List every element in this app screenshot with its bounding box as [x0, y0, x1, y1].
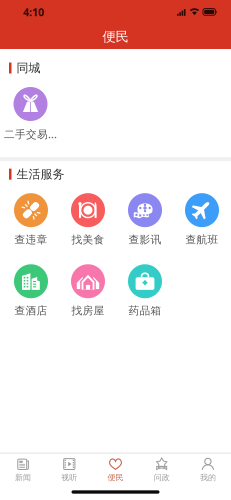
- staticText: 找房屋: [71, 304, 104, 317]
- staticText: 问政: [154, 473, 170, 482]
- staticText: 便民: [102, 29, 128, 45]
- staticText: 查酒店: [14, 304, 47, 317]
- staticText: 二手交易...: [4, 127, 57, 141]
- button[interactable]: 我的: [185, 457, 231, 482]
- button[interactable]: 二手交易...: [2, 87, 59, 141]
- button[interactable]: 查违章: [2, 193, 59, 246]
- button[interactable]: 便民: [92, 457, 139, 482]
- staticText: 4:10: [23, 5, 44, 19]
- staticText: 查航班: [185, 233, 218, 246]
- button[interactable]: 问政: [139, 457, 185, 482]
- staticText: 生活服务: [16, 167, 64, 181]
- staticText: 便民: [107, 473, 123, 482]
- staticText: 新闻: [15, 473, 31, 482]
- button[interactable]: 找房屋: [59, 264, 116, 317]
- button[interactable]: 新闻: [0, 457, 46, 482]
- button[interactable]: 找美食: [59, 193, 116, 246]
- staticText: 查违章: [14, 233, 47, 246]
- staticText: 视听: [61, 473, 77, 482]
- button[interactable]: 查航班: [173, 193, 230, 246]
- staticText: 查影讯: [128, 233, 161, 246]
- button[interactable]: 视听: [46, 457, 92, 482]
- button[interactable]: 查酒店: [2, 264, 59, 317]
- staticText: 找美食: [71, 233, 104, 246]
- staticText: 同城: [16, 61, 40, 75]
- button[interactable]: 查影讯: [116, 193, 173, 246]
- staticText: 药品箱: [128, 304, 161, 317]
- button[interactable]: 药品箱: [116, 264, 173, 317]
- staticText: 我的: [200, 473, 216, 482]
